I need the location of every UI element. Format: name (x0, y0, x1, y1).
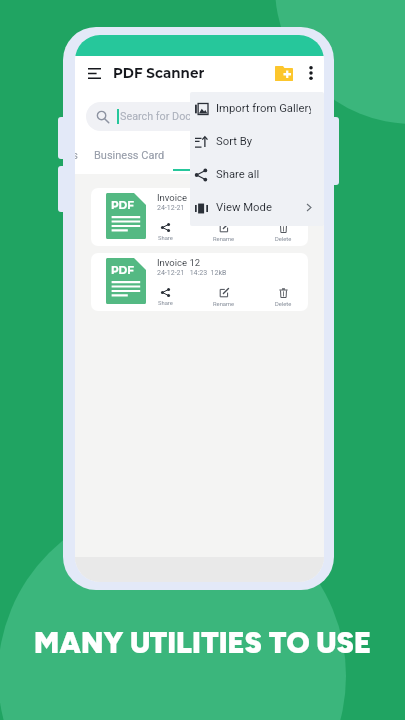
staticText: Invoice 12 (157, 257, 201, 268)
staticText: PDF Scanner (113, 65, 205, 81)
staticText: Delete (275, 236, 292, 243)
button[interactable]: Open navigation menu (81, 60, 107, 86)
button[interactable]: Rename (204, 286, 244, 310)
button[interactable]: Share (145, 221, 185, 245)
staticText: PDF (111, 264, 134, 277)
staticText: Delete (275, 301, 292, 308)
button[interactable]: Delete (263, 221, 303, 245)
staticText: 24-12-21 14:23 12kB (157, 204, 227, 212)
button[interactable]: Search for Documents (86, 102, 313, 131)
staticText: Sort By (216, 135, 253, 148)
button[interactable]: ID Card (173, 143, 294, 173)
staticText: Share (158, 300, 173, 307)
button[interactable]: Delete (263, 286, 303, 310)
staticText: Share (158, 235, 173, 242)
button[interactable]: Share (145, 286, 185, 310)
button[interactable]: More options (300, 62, 322, 84)
staticText: Import from Gallery (216, 102, 311, 115)
button[interactable]: Import from Gallery (190, 92, 324, 125)
button[interactable]: Docs (75, 143, 86, 173)
staticText: Docs (75, 149, 78, 162)
staticText: Rename (213, 301, 235, 308)
button[interactable]: Create new folder (271, 60, 297, 86)
button[interactable]: View Mode (190, 191, 324, 224)
staticText: MANY UTILITIES TO USE (34, 625, 371, 660)
staticText: PDF (111, 199, 134, 212)
button[interactable]: Rename (204, 221, 244, 245)
staticText: 24-12-21 14:23 12kB (157, 269, 227, 277)
button[interactable]: Share all (190, 158, 324, 191)
button[interactable]: PDF (91, 253, 308, 311)
button[interactable]: Business Card (86, 143, 173, 173)
button[interactable]: Sort By (190, 125, 324, 158)
staticText: Business Card (94, 149, 165, 162)
staticText: View Mode (216, 201, 272, 214)
staticText: Rename (213, 236, 235, 243)
button[interactable]: PDF (91, 188, 308, 246)
staticText: Invoice 13 (157, 192, 201, 203)
staticText: Search for Documents (120, 110, 228, 123)
staticText: Share all (216, 168, 260, 181)
